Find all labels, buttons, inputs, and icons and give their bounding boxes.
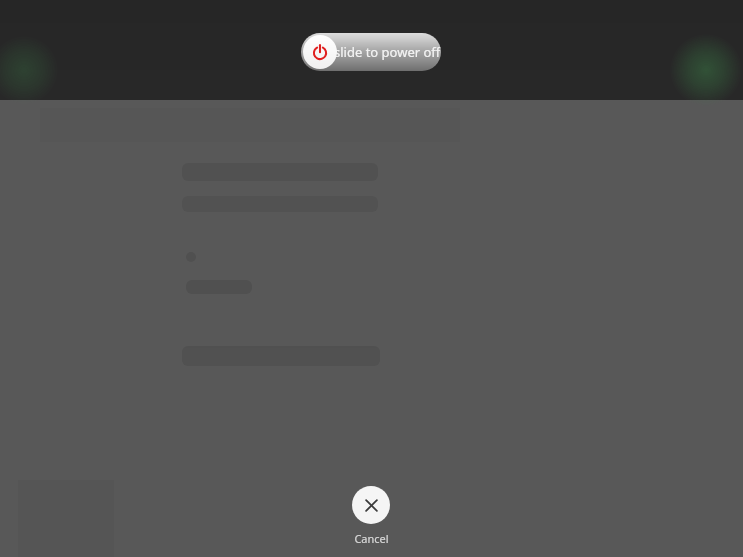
- staticText: Cancel: [354, 531, 389, 546]
- staticText: slide to power off: [334, 43, 441, 61]
- button[interactable]: Slide to power off: [303, 35, 337, 69]
- button[interactable]: slide to power off: [301, 33, 441, 71]
- button[interactable]: Cancel: [340, 486, 402, 546]
